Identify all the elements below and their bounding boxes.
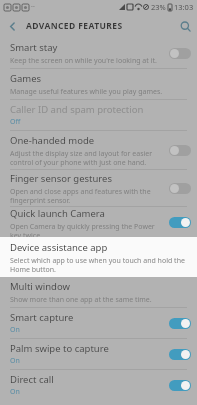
button[interactable]: Smart stay bbox=[0, 38, 197, 68]
staticText: Multi window bbox=[10, 280, 70, 293]
staticText: One-handed mode bbox=[10, 134, 95, 147]
staticText: On bbox=[10, 356, 20, 366]
staticText: ·· bbox=[31, 2, 35, 12]
button[interactable]: Toggle on bbox=[169, 318, 191, 329]
button[interactable]: Toggle off bbox=[169, 183, 191, 194]
staticText: 23% bbox=[151, 2, 166, 12]
button[interactable]: Device assistance app bbox=[0, 237, 197, 277]
staticText: Palm swipe to capture bbox=[10, 342, 109, 355]
staticText: Smart capture bbox=[10, 311, 74, 324]
button[interactable]: Toggle on bbox=[169, 217, 191, 228]
button[interactable]: Caller ID and spam protection bbox=[0, 100, 197, 130]
staticText: Show more than one app at the same time. bbox=[10, 295, 152, 305]
staticText: Finger sensor gestures bbox=[10, 172, 113, 185]
staticText: Device assistance app bbox=[10, 241, 108, 254]
button[interactable]: One-handed mode bbox=[0, 131, 197, 169]
staticText: Quick launch Camera bbox=[10, 207, 105, 220]
button[interactable]: Palm swipe to capture bbox=[0, 339, 197, 369]
staticText: On bbox=[10, 325, 20, 335]
button[interactable]: Search bbox=[173, 14, 197, 38]
button[interactable]: Toggle off bbox=[169, 145, 191, 156]
button[interactable]: Smart capture bbox=[0, 308, 197, 338]
staticText: Manage useful features while you play ga… bbox=[10, 87, 163, 97]
staticText: Open Camera by quickly pressing the Powe… bbox=[10, 222, 165, 237]
staticText: Caller ID and spam protection bbox=[10, 103, 144, 116]
button[interactable]: Navigate up bbox=[0, 14, 24, 38]
staticText: Direct call bbox=[10, 373, 54, 386]
button[interactable]: Toggle on bbox=[169, 380, 191, 391]
staticText: Open and close apps and features with th… bbox=[10, 187, 165, 205]
staticText: ADVANCED FEATURES bbox=[26, 20, 123, 32]
staticText: Select which app to use when you touch a… bbox=[10, 256, 191, 274]
staticText: Adjust the display size and layout for e… bbox=[10, 149, 165, 167]
button[interactable]: Quick launch Camera bbox=[0, 207, 197, 237]
staticText: 13:03 bbox=[174, 2, 194, 12]
staticText: On bbox=[10, 387, 20, 397]
staticText: Smart stay bbox=[10, 41, 58, 54]
button[interactable]: Toggle on bbox=[169, 349, 191, 360]
button[interactable]: Finger sensor gestures bbox=[0, 170, 197, 206]
staticText: Keep the screen on while you're looking … bbox=[10, 56, 157, 66]
button[interactable]: Toggle off bbox=[169, 48, 191, 59]
button[interactable]: Multi window bbox=[0, 277, 197, 307]
button[interactable]: Direct call bbox=[0, 370, 197, 400]
staticText: Off bbox=[10, 117, 21, 127]
button[interactable]: Games bbox=[0, 69, 197, 99]
staticText: Games bbox=[10, 72, 42, 85]
